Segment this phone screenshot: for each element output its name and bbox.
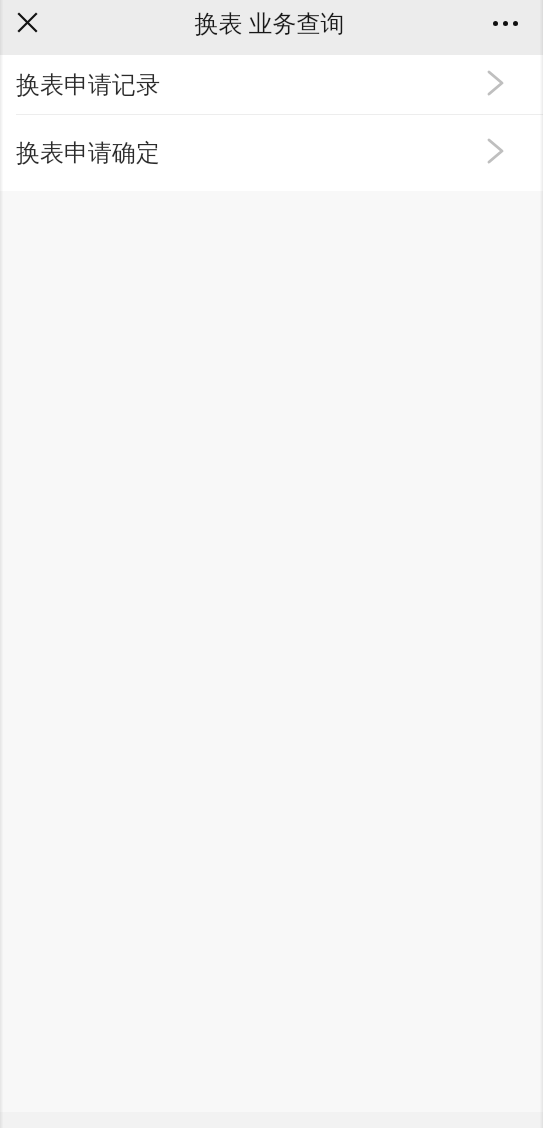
staticText: 换表申请记录 (16, 70, 160, 100)
staticText: 换表 业务查询 (194, 6, 345, 39)
staticText: 换表申请确定 (16, 138, 160, 168)
button[interactable]: Close (9, 4, 46, 41)
button[interactable]: More options (485, 3, 525, 43)
button[interactable]: 换表申请确定 (0, 115, 543, 191)
button[interactable]: 换表申请记录 (0, 55, 543, 114)
